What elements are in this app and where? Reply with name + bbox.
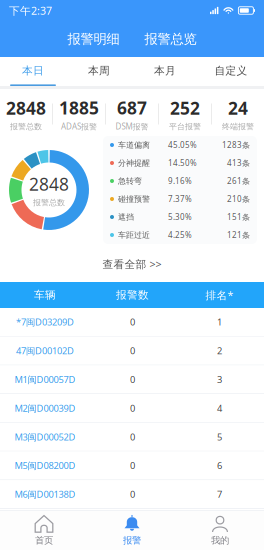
staticText: ADAS报警 bbox=[61, 121, 97, 132]
staticText: 查看全部 >> bbox=[102, 257, 161, 271]
staticText: 9.16% bbox=[168, 176, 192, 186]
staticText: 本周 bbox=[88, 64, 110, 77]
staticText: 排名* bbox=[205, 288, 233, 302]
staticText: 4 bbox=[217, 402, 222, 414]
staticText: DSM报警 bbox=[115, 121, 148, 132]
staticText: 1 bbox=[217, 316, 222, 328]
staticText: 687 bbox=[117, 96, 147, 119]
staticText: 报警总数 bbox=[33, 198, 65, 207]
button[interactable]: 自定义 bbox=[198, 57, 264, 86]
staticText: 6 bbox=[217, 459, 222, 472]
staticText: 0 bbox=[130, 488, 135, 500]
staticText: 2 bbox=[217, 344, 222, 357]
staticText: 遮挡 bbox=[118, 212, 134, 222]
staticText: 车辆 bbox=[34, 288, 56, 301]
staticText: 分神提醒 bbox=[118, 158, 150, 168]
staticText: 终端报警 bbox=[222, 122, 254, 131]
staticText: 5 bbox=[217, 431, 222, 443]
staticText: *7闽D03209D bbox=[16, 316, 74, 328]
staticText: 0 bbox=[130, 431, 135, 443]
staticText: 47闽D00102D bbox=[16, 344, 74, 357]
button[interactable]: 报警明细 bbox=[67, 31, 119, 47]
staticText: 0 bbox=[130, 459, 135, 472]
staticText: 14.50% bbox=[168, 158, 197, 168]
staticText: 0 bbox=[130, 344, 135, 357]
staticText: 1283条 bbox=[222, 140, 250, 150]
staticText: 报警总数 bbox=[10, 122, 42, 131]
staticText: 急转弯 bbox=[118, 176, 142, 186]
staticText: 4.25% bbox=[168, 230, 192, 240]
staticText: 平台报警 bbox=[169, 122, 201, 131]
staticText: 45.05% bbox=[168, 140, 197, 150]
staticText: 碰撞预警 bbox=[118, 194, 150, 204]
staticText: 210条 bbox=[227, 194, 250, 204]
button[interactable]: 首页 bbox=[0, 510, 88, 550]
button[interactable]: 报警总览 bbox=[144, 31, 196, 47]
button[interactable]: 本日 bbox=[0, 57, 66, 86]
button[interactable]: 报警 bbox=[88, 510, 176, 550]
button[interactable]: *7闽D03209D bbox=[0, 308, 264, 336]
button[interactable]: 本月 bbox=[132, 57, 198, 86]
staticText: 2848 bbox=[29, 173, 69, 196]
button[interactable]: M6闽D00138D bbox=[0, 480, 264, 508]
button[interactable]: M5闽D08200D bbox=[0, 451, 264, 479]
staticText: 151条 bbox=[227, 212, 250, 222]
button[interactable]: 本周 bbox=[66, 57, 132, 86]
staticText: M3闽D00052D bbox=[14, 431, 75, 443]
button[interactable]: 47闽D00102D bbox=[0, 337, 264, 365]
button[interactable]: M2闽D00039D bbox=[0, 394, 264, 422]
staticText: 7.37% bbox=[168, 194, 192, 204]
staticText: 报警明细 bbox=[67, 31, 119, 47]
staticText: 首页 bbox=[35, 535, 53, 546]
staticText: 0 bbox=[130, 402, 135, 414]
staticText: 报警数 bbox=[116, 288, 149, 301]
staticText: 3 bbox=[217, 373, 222, 386]
staticText: 5.30% bbox=[168, 212, 192, 222]
staticText: 本日 bbox=[22, 64, 44, 77]
staticText: M2闽D00039D bbox=[14, 402, 75, 414]
staticText: M1闽D00057D bbox=[14, 373, 75, 386]
staticText: 下午2:37 bbox=[9, 3, 52, 18]
staticText: 2848 bbox=[6, 97, 46, 120]
staticText: 自定义 bbox=[214, 64, 247, 77]
staticText: 车距过近 bbox=[118, 230, 150, 240]
button[interactable]: 查看全部 >> bbox=[0, 246, 264, 282]
staticText: 1885 bbox=[59, 96, 99, 119]
staticText: M6闽D00138D bbox=[14, 488, 75, 500]
staticText: 261条 bbox=[227, 176, 250, 186]
staticText: 本月 bbox=[154, 64, 176, 77]
staticText: 0 bbox=[130, 373, 135, 386]
staticText: 7 bbox=[217, 488, 222, 500]
staticText: 0 bbox=[130, 316, 135, 328]
button[interactable]: M3闽D00052D bbox=[0, 423, 264, 451]
button[interactable]: 我的 bbox=[176, 510, 264, 550]
staticText: 报警总览 bbox=[144, 31, 196, 47]
staticText: 24 bbox=[228, 97, 248, 120]
staticText: 252 bbox=[170, 97, 200, 120]
staticText: 报警 bbox=[123, 535, 141, 546]
staticText: 413条 bbox=[227, 158, 250, 168]
staticText: M5闽D08200D bbox=[14, 459, 75, 472]
staticText: 我的 bbox=[211, 535, 229, 546]
staticText: 121条 bbox=[227, 230, 250, 240]
staticText: 车道偏离 bbox=[118, 140, 150, 150]
button[interactable]: M1闽D00057D bbox=[0, 365, 264, 393]
